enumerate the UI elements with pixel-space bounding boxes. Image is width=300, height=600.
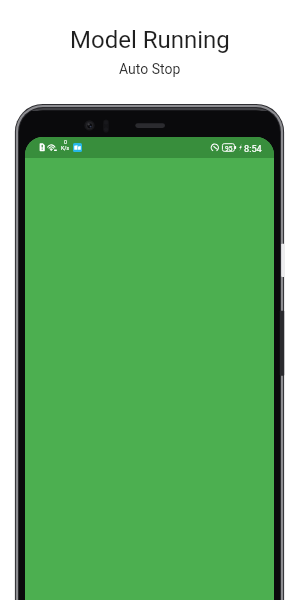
staticText: Auto Stop — [119, 61, 181, 77]
staticText: 8:54 — [244, 143, 262, 154]
staticText: Model Running — [70, 26, 230, 54]
staticText: 95 — [225, 145, 233, 153]
staticText: K/s — [61, 145, 70, 151]
staticText: 0 — [64, 139, 67, 145]
